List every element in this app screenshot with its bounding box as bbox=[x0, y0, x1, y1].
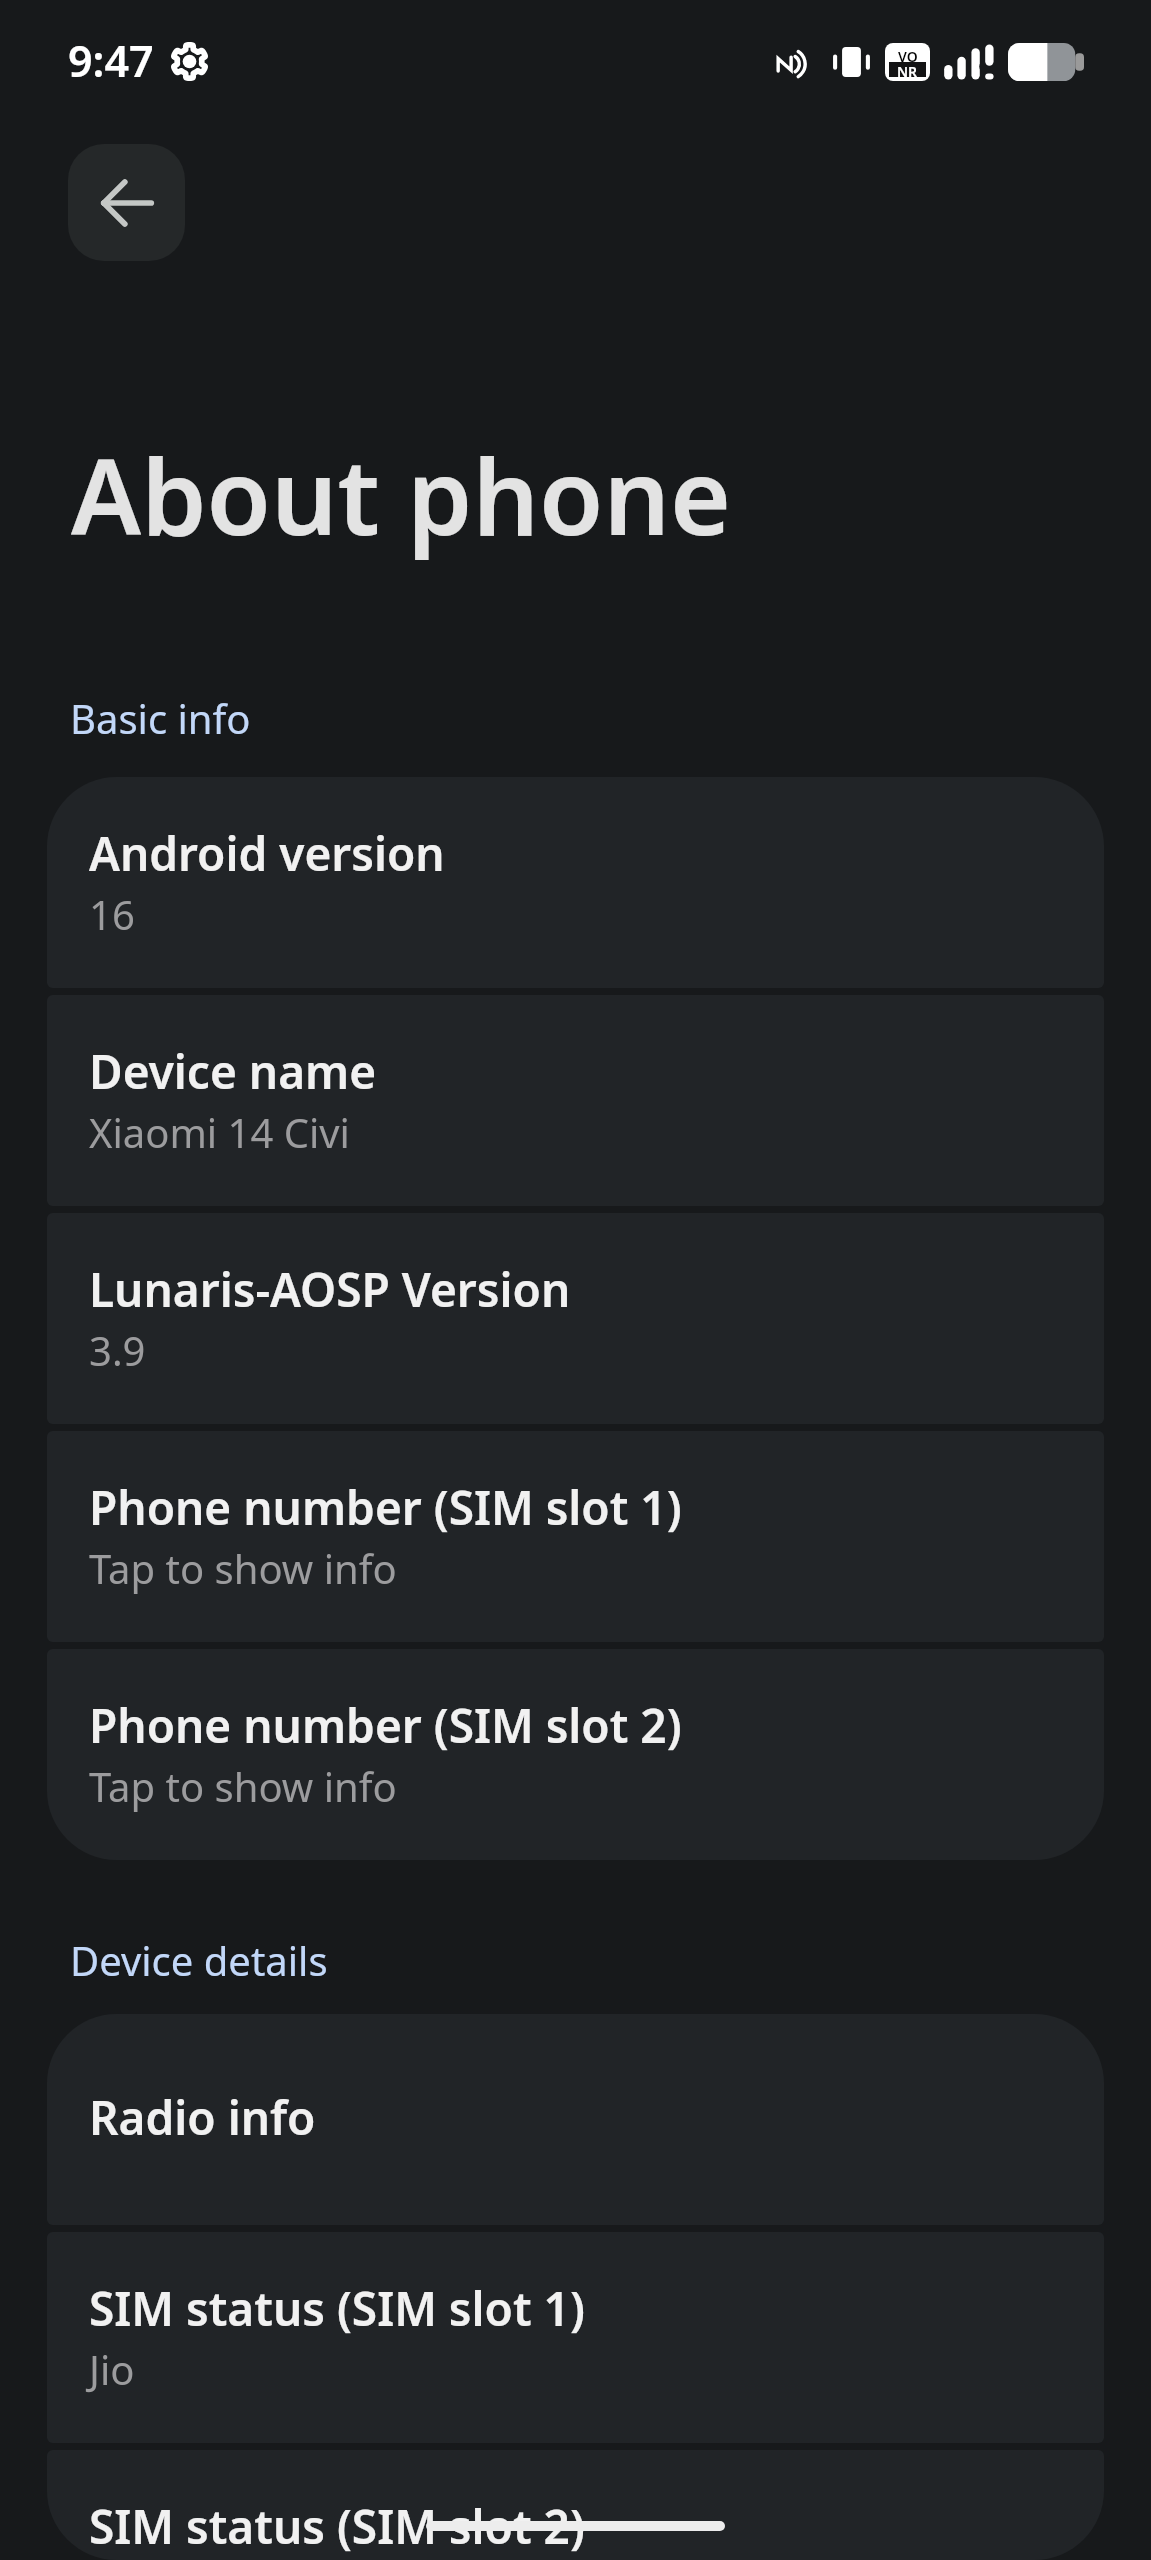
staticText: 16 bbox=[89, 887, 135, 941]
staticText: Lunaris-AOSP Version bbox=[89, 1258, 571, 1321]
staticText: Device details bbox=[70, 1933, 328, 1987]
staticText: Device name bbox=[89, 1040, 377, 1103]
staticText: Xiaomi 14 Civi bbox=[89, 1105, 350, 1159]
staticText: SIM status (SIM slot 2) bbox=[89, 2495, 585, 2558]
button[interactable]: SIM status (SIM slot 2) bbox=[47, 2450, 1104, 2560]
staticText: About phone bbox=[71, 423, 732, 565]
button[interactable]: Phone number (SIM slot 2) bbox=[47, 1649, 1104, 1860]
staticText: NR bbox=[897, 62, 918, 77]
button[interactable]: Device name bbox=[47, 995, 1104, 1206]
staticText: Phone number (SIM slot 2) bbox=[89, 1694, 682, 1757]
staticText: SIM status (SIM slot 1) bbox=[89, 2277, 585, 2340]
staticText: 3.9 bbox=[89, 1323, 146, 1377]
staticText: Radio info bbox=[89, 2086, 316, 2149]
staticText: Android version bbox=[89, 822, 445, 885]
staticText: Tap to show info bbox=[89, 1759, 397, 1813]
staticText: 9:47 bbox=[68, 31, 154, 90]
button[interactable]: Lunaris-AOSP Version bbox=[47, 1213, 1104, 1424]
button[interactable]: Android version bbox=[47, 777, 1104, 988]
staticText: Jio bbox=[89, 2342, 135, 2396]
staticText: Phone number (SIM slot 1) bbox=[89, 1476, 682, 1539]
button[interactable]: SIM status (SIM slot 1) bbox=[47, 2232, 1104, 2443]
button[interactable]: Back bbox=[68, 144, 185, 261]
staticText: Basic info bbox=[70, 691, 251, 745]
button[interactable]: Radio info bbox=[47, 2014, 1104, 2225]
staticText: Tap to show info bbox=[89, 1541, 397, 1595]
staticText: VO bbox=[898, 47, 918, 62]
button[interactable]: Phone number (SIM slot 1) bbox=[47, 1431, 1104, 1642]
